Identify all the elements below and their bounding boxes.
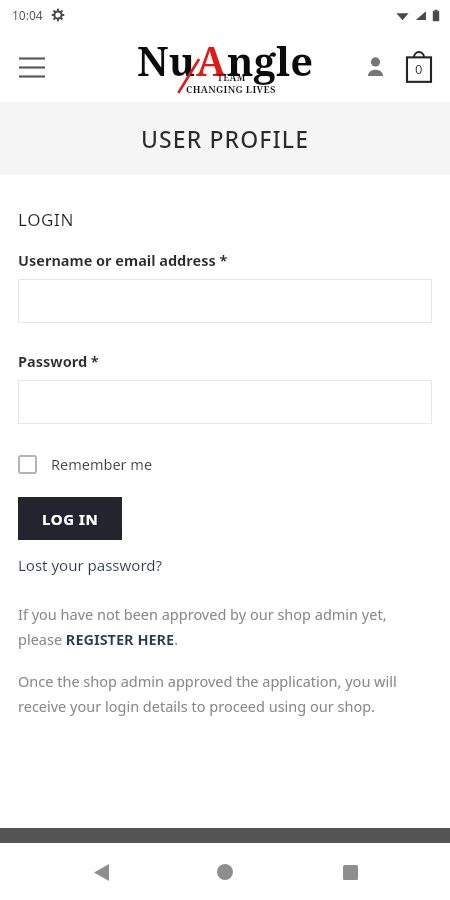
staticText: 10:04: [12, 7, 43, 23]
staticText: LOGIN: [18, 208, 74, 231]
staticText: CHANGING LIVES: [186, 83, 276, 96]
staticText: USER PROFILE: [141, 123, 310, 154]
staticText: Remember me: [51, 454, 153, 474]
staticText: Once the shop admin approved the applica…: [18, 671, 432, 717]
button[interactable]: Open menu: [12, 46, 52, 86]
staticText: Username or email address *: [18, 250, 228, 270]
button[interactable]: Cart, 0 items: [402, 46, 436, 86]
staticText: Lost your password?: [18, 555, 163, 575]
button[interactable]: Lost your password?: [18, 555, 163, 575]
staticText: TEAM: [217, 71, 246, 83]
button[interactable]: Home: [201, 848, 249, 896]
button[interactable]: LOG IN: [18, 497, 122, 540]
staticText: If you have not been approved by our sho…: [18, 604, 432, 650]
staticText: LOG IN: [42, 509, 99, 529]
staticText: ngle: [227, 33, 314, 87]
button[interactable]: [18, 279, 432, 323]
staticText: A: [196, 33, 227, 87]
staticText: Password *: [18, 351, 99, 371]
button[interactable]: Remember me: [18, 452, 153, 476]
staticText: 0: [415, 60, 423, 78]
staticText: Nu: [137, 33, 196, 87]
button[interactable]: My account: [360, 51, 390, 81]
button[interactable]: Back: [77, 848, 125, 896]
button[interactable]: [18, 380, 432, 424]
button[interactable]: Recent apps: [326, 848, 374, 896]
